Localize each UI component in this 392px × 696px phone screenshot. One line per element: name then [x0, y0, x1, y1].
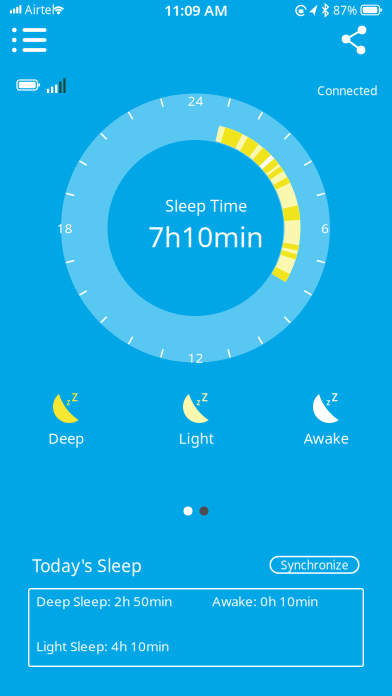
button[interactable]: Synchronize [269, 556, 359, 574]
staticText: 24 [187, 92, 203, 109]
staticText: Airtel [24, 1, 54, 17]
staticText: Awake: 0h 10min [212, 592, 318, 610]
staticText: Connected [317, 82, 377, 98]
staticText: 6 [321, 219, 329, 237]
staticText: Synchronize [280, 557, 348, 573]
staticText: Light Sleep: 4h 10min [36, 637, 169, 655]
staticText: 7h10min [148, 218, 263, 255]
staticText: Deep Sleep: 2h 50min [36, 592, 172, 610]
button[interactable]: Share [336, 22, 372, 58]
staticText: Light [178, 428, 213, 448]
staticText: z [196, 397, 200, 407]
staticText: Z [71, 390, 77, 404]
staticText: z [326, 397, 330, 407]
staticText: 18 [56, 219, 72, 237]
staticText: z [66, 397, 70, 407]
button[interactable]: Menu [6, 23, 54, 57]
staticText: Deep [48, 428, 84, 448]
staticText: Sleep Time [165, 195, 247, 216]
staticText: Today's Sleep [32, 554, 142, 577]
staticText: Z [331, 390, 337, 404]
staticText: 87% [333, 2, 357, 18]
staticText: Z [201, 390, 207, 404]
staticText: 12 [187, 349, 203, 366]
staticText: Awake [303, 428, 348, 448]
staticText: 11:09 AM [164, 0, 228, 20]
